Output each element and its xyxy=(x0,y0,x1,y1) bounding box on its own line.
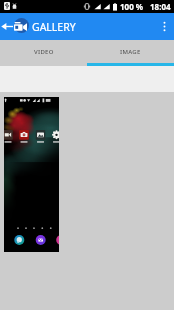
button[interactable]: VIDEO xyxy=(0,40,87,63)
staticText: 18:04 xyxy=(150,1,171,12)
staticText: GALLERY xyxy=(32,20,76,34)
staticText: 100 % xyxy=(120,1,144,12)
button[interactable]: IMAGE xyxy=(87,40,174,63)
button[interactable]: More options xyxy=(154,13,174,40)
button[interactable]: Navigate up xyxy=(0,13,14,40)
staticText: IMAGE xyxy=(120,48,141,56)
button[interactable] xyxy=(4,97,59,252)
staticText: VIDEO xyxy=(34,48,54,56)
